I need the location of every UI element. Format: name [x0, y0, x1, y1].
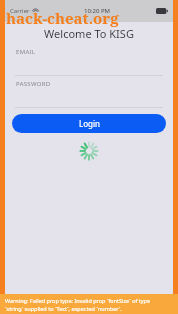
staticText: 10:20 PM: [84, 7, 111, 15]
other: Loading: [80, 142, 98, 160]
staticText: PASSWORD: [16, 80, 51, 88]
button[interactable]: Warning: Failed prop type: Invalid prop …: [0, 294, 178, 314]
button[interactable]: Login: [12, 114, 166, 133]
staticText: hack-cheat.org: [6, 8, 119, 28]
staticText: Login: [79, 118, 100, 129]
staticText: Warning: Failed prop type: Invalid prop …: [5, 297, 151, 304]
staticText: `string` supplied to `Text`, expected `n…: [5, 305, 122, 312]
staticText: Welcome To KISG: [44, 26, 134, 41]
button[interactable]: PASSWORD: [5, 76, 173, 107]
staticText: EMAIL: [16, 48, 36, 56]
staticText: Carrier: [10, 7, 30, 15]
button[interactable]: EMAIL: [5, 44, 173, 75]
